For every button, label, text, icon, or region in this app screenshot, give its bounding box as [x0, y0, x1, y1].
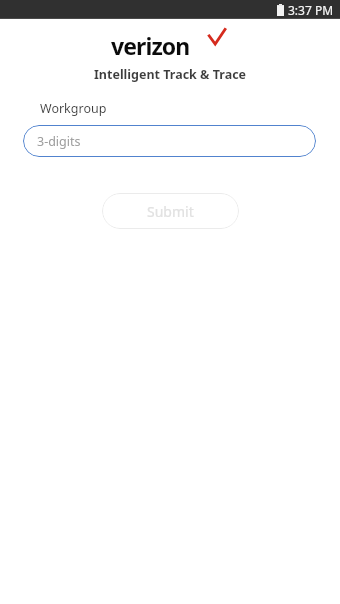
staticText: 3-digits — [37, 133, 81, 150]
staticText: 3:37 PM — [288, 2, 334, 18]
staticText: Submit — [147, 202, 194, 221]
button[interactable]: Submit — [102, 193, 239, 229]
staticText: Intelligent Track & Trace — [94, 66, 247, 83]
staticText: verizon — [111, 30, 190, 56]
staticText: Workgroup — [40, 100, 107, 117]
other: Battery — [277, 4, 284, 16]
button[interactable]: 3-digits — [23, 125, 316, 157]
